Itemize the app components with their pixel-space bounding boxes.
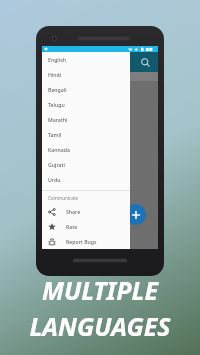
staticText: Hindi bbox=[48, 71, 62, 78]
staticText: Urdu bbox=[48, 176, 61, 183]
button[interactable]: Telugu bbox=[42, 97, 130, 112]
button[interactable]: Marathi bbox=[42, 112, 130, 127]
staticText: Tamil bbox=[48, 131, 62, 138]
staticText: Report Bugs bbox=[66, 238, 97, 245]
button[interactable]: Tamil bbox=[42, 127, 130, 142]
button[interactable]: Hindi bbox=[42, 67, 130, 82]
staticText: Gujrati bbox=[48, 161, 65, 168]
staticText: Kannada bbox=[48, 146, 70, 153]
staticText: English bbox=[48, 56, 66, 63]
staticText: Bengali bbox=[48, 86, 67, 93]
button[interactable]: Report Bugs bbox=[42, 234, 130, 249]
button[interactable]: Search bbox=[138, 55, 152, 69]
button[interactable]: Share bbox=[42, 204, 130, 219]
staticText: Rate bbox=[66, 223, 78, 230]
staticText: MULTIPLE bbox=[42, 273, 158, 307]
button[interactable]: Gujrati bbox=[42, 157, 130, 172]
button[interactable]: Bengali bbox=[42, 82, 130, 97]
button[interactable]: Add bbox=[125, 204, 146, 225]
staticText: Marathi bbox=[48, 116, 68, 123]
button[interactable]: Kannada bbox=[42, 142, 130, 157]
staticText: Communicate bbox=[48, 195, 79, 201]
staticText: Telugu bbox=[48, 101, 65, 108]
button[interactable]: English bbox=[42, 52, 130, 67]
button[interactable]: Rate bbox=[42, 219, 130, 234]
staticText: LANGUAGES bbox=[29, 309, 171, 343]
staticText: Share bbox=[66, 208, 81, 215]
button[interactable]: Urdu bbox=[42, 172, 130, 187]
